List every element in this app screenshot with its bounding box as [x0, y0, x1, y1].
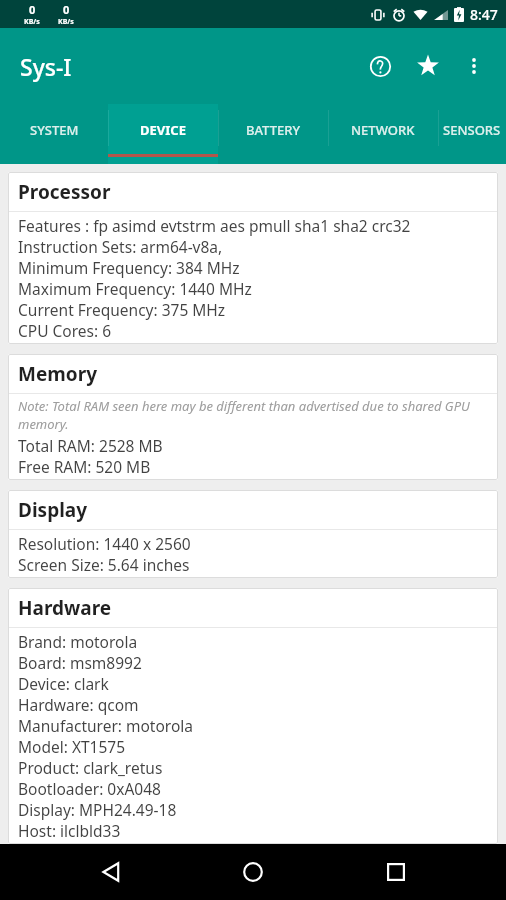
staticText: Current Frequency: 375 MHz: [18, 299, 226, 320]
staticText: Display: MPH24.49-18: [18, 799, 177, 820]
button[interactable]: SENSORS: [438, 104, 506, 164]
button[interactable]: Back: [79, 844, 143, 900]
staticText: BATTERY: [246, 121, 301, 139]
staticText: KB/s: [24, 17, 40, 27]
staticText: Processor: [18, 179, 111, 205]
button[interactable]: Recent apps: [364, 844, 428, 900]
staticText: Maximum Frequency: 1440 MHz: [18, 278, 252, 299]
staticText: SENSORS: [443, 121, 501, 139]
staticText: Hardware: [18, 595, 112, 621]
staticText: Board: msm8992: [18, 652, 142, 673]
staticText: Note: Total RAM seen here may be differe…: [18, 397, 490, 433]
staticText: Display: [18, 497, 88, 523]
button[interactable]: SYSTEM: [0, 104, 108, 164]
button[interactable]: Processor: [8, 172, 498, 344]
staticText: Minimum Frequency: 384 MHz: [18, 257, 240, 278]
staticText: 8:47: [470, 5, 498, 24]
button[interactable]: More options: [452, 44, 496, 88]
button[interactable]: Favorite: [404, 42, 452, 90]
staticText: Device: clark: [18, 673, 109, 694]
staticText: Bootloader: 0xA048: [18, 778, 161, 799]
staticText: 0: [29, 2, 36, 17]
staticText: Sys-I: [20, 51, 72, 82]
button[interactable]: Display: [8, 490, 498, 578]
button[interactable]: DEVICE: [108, 104, 218, 164]
staticText: KB/s: [58, 17, 74, 27]
staticText: NETWORK: [351, 121, 415, 139]
button[interactable]: Home: [221, 844, 285, 900]
staticText: Memory: [18, 361, 98, 387]
staticText: Brand: motorola: [18, 631, 138, 652]
staticText: Model: XT1575: [18, 736, 126, 757]
staticText: Manufacturer: motorola: [18, 715, 193, 736]
button[interactable]: NETWORK: [328, 104, 438, 164]
staticText: Resolution: 1440 x 2560: [18, 533, 191, 554]
button[interactable]: Help: [356, 42, 404, 90]
button[interactable]: Hardware: [8, 588, 498, 844]
staticText: Screen Size: 5.64 inches: [18, 554, 190, 575]
button[interactable]: BATTERY: [218, 104, 328, 164]
staticText: Hardware: qcom: [18, 694, 139, 715]
staticText: DEVICE: [140, 121, 186, 139]
staticText: Instruction Sets: arm64-v8a,: [18, 236, 223, 257]
staticText: Product: clark_retus: [18, 757, 163, 778]
staticText: Free RAM: 520 MB: [18, 456, 151, 477]
staticText: 0: [63, 2, 70, 17]
button[interactable]: Memory: [8, 354, 498, 480]
staticText: Host: ilclbld33: [18, 820, 121, 841]
staticText: Features : fp asimd evtstrm aes pmull sh…: [18, 215, 411, 236]
staticText: Total RAM: 2528 MB: [18, 435, 163, 456]
staticText: CPU Cores: 6: [18, 320, 112, 341]
staticText: SYSTEM: [30, 121, 79, 139]
